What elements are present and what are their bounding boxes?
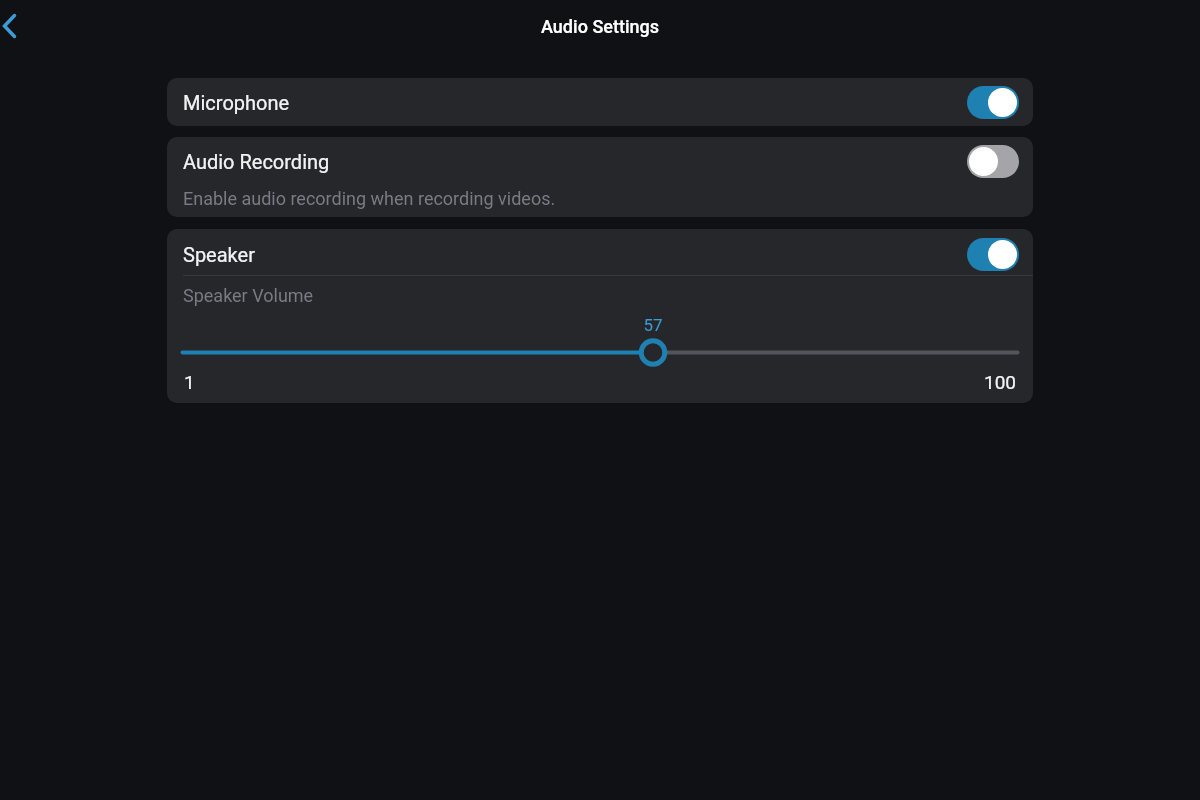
staticText: Enable audio recording when recording vi… bbox=[183, 188, 556, 209]
staticText: Speaker Volume bbox=[183, 285, 314, 306]
staticText: 57 bbox=[633, 315, 673, 335]
button[interactable]: Speaker bbox=[167, 229, 1033, 403]
button[interactable] bbox=[2, 13, 18, 39]
staticText: Audio Recording bbox=[183, 150, 330, 173]
button[interactable] bbox=[967, 145, 1019, 178]
button[interactable] bbox=[167, 337, 1033, 368]
staticText: Speaker bbox=[183, 243, 255, 266]
button[interactable] bbox=[967, 86, 1019, 119]
button[interactable]: Audio Recording bbox=[167, 137, 1033, 217]
staticText: 100 bbox=[976, 371, 1016, 393]
button[interactable]: Microphone bbox=[167, 78, 1033, 126]
staticText: Audio Settings bbox=[0, 16, 1200, 37]
staticText: 1 bbox=[184, 371, 195, 393]
staticText: Microphone bbox=[183, 91, 290, 114]
button[interactable] bbox=[967, 238, 1019, 271]
